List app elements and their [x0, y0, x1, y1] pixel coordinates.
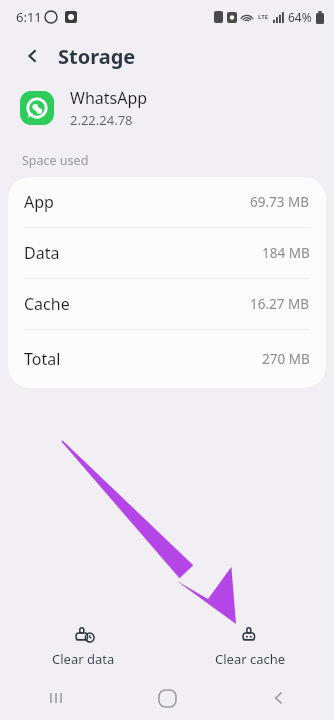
button[interactable]: Back	[18, 41, 48, 71]
staticText: Storage	[58, 43, 136, 70]
staticText: 270 MB	[262, 350, 310, 368]
staticText: 2.22.24.78	[70, 111, 133, 129]
staticText: 69.73 MB	[250, 193, 310, 211]
staticText: Cache	[24, 293, 70, 315]
button[interactable]: App	[8, 177, 326, 228]
staticText: 16.27 MB	[250, 295, 310, 313]
staticText: App	[24, 191, 54, 213]
button[interactable]: Clear cache	[167, 614, 334, 676]
staticText: 64%	[288, 9, 312, 25]
button[interactable]: Total	[8, 330, 326, 388]
staticText: Total	[24, 348, 61, 370]
button[interactable]: Back	[223, 676, 334, 720]
staticText: WhatsApp	[70, 87, 148, 109]
button[interactable]: Clear data	[0, 614, 167, 676]
staticText: 6:11	[16, 8, 42, 26]
staticText: Clear data	[52, 650, 115, 668]
button[interactable]: Recents	[0, 676, 112, 720]
staticText: Space used	[22, 152, 89, 169]
button[interactable]: Data	[8, 228, 326, 279]
button[interactable]: Cache	[8, 279, 326, 330]
staticText: Data	[24, 242, 60, 264]
staticText: 184 MB	[262, 244, 310, 262]
staticText: LTE	[258, 13, 269, 21]
staticText: Clear cache	[215, 650, 286, 668]
button[interactable]: Home	[112, 676, 223, 720]
